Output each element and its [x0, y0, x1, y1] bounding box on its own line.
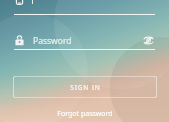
button[interactable]: SIGN IN	[13, 76, 157, 98]
staticText: SIGN IN	[70, 83, 101, 92]
button[interactable]: Phone number	[0, 0, 169, 15]
staticText: Password	[33, 35, 72, 47]
staticText: Forgot password	[57, 109, 113, 119]
button[interactable]: Forgot password	[49, 106, 121, 122]
other: Phone number	[14, 0, 25, 5]
button[interactable]: Password	[0, 34, 169, 50]
button[interactable]: Show password	[142, 34, 155, 47]
